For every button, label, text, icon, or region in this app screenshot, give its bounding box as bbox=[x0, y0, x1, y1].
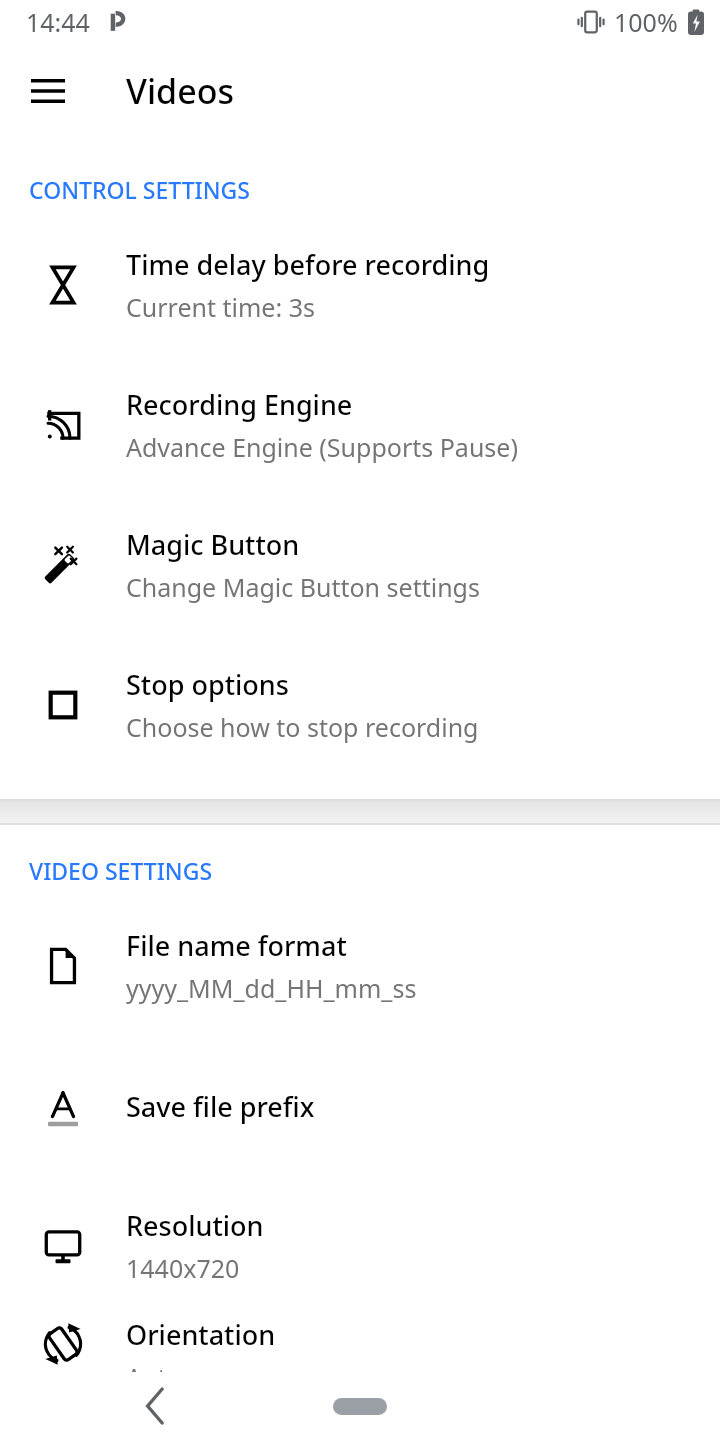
button[interactable]: Time delay before recording bbox=[0, 215, 720, 355]
button[interactable]: Save file prefix bbox=[0, 1036, 720, 1176]
staticText: yyyy_MM_dd_HH_mm_ss bbox=[126, 971, 417, 1005]
staticText: Stop options bbox=[126, 666, 289, 703]
staticText: Save file prefix bbox=[126, 1088, 315, 1125]
staticText: Magic Button bbox=[126, 526, 300, 563]
staticText: CONTROL SETTINGS bbox=[29, 174, 250, 205]
button[interactable]: Recording Engine bbox=[0, 355, 720, 495]
button[interactable]: Stop options bbox=[0, 635, 720, 775]
staticText: Time delay before recording bbox=[126, 246, 490, 283]
staticText: VIDEO SETTINGS bbox=[29, 855, 213, 886]
staticText: Advance Engine (Supports Pause) bbox=[126, 430, 518, 464]
staticText: Change Magic Button settings bbox=[126, 570, 480, 604]
staticText: Videos bbox=[126, 68, 234, 114]
staticText: 100% bbox=[614, 5, 678, 39]
button[interactable]: Back bbox=[125, 1375, 187, 1437]
staticText: Recording Engine bbox=[126, 386, 353, 423]
staticText: 1440x720 bbox=[126, 1251, 240, 1285]
staticText: Choose how to stop recording bbox=[126, 710, 479, 744]
button[interactable]: Resolution bbox=[0, 1176, 720, 1316]
staticText: Current time: 3s bbox=[126, 290, 315, 324]
staticText: Auto bbox=[126, 1360, 182, 1372]
button[interactable]: Home bbox=[333, 1395, 387, 1417]
button[interactable]: Orientation bbox=[0, 1316, 720, 1372]
button[interactable]: File name format bbox=[0, 896, 720, 1036]
button[interactable]: Open navigation menu bbox=[14, 57, 82, 125]
button[interactable]: Magic Button bbox=[0, 495, 720, 635]
staticText: File name format bbox=[126, 927, 347, 964]
staticText: Orientation bbox=[126, 1316, 276, 1353]
staticText: Resolution bbox=[126, 1207, 264, 1244]
staticText: 14:44 bbox=[26, 5, 90, 39]
